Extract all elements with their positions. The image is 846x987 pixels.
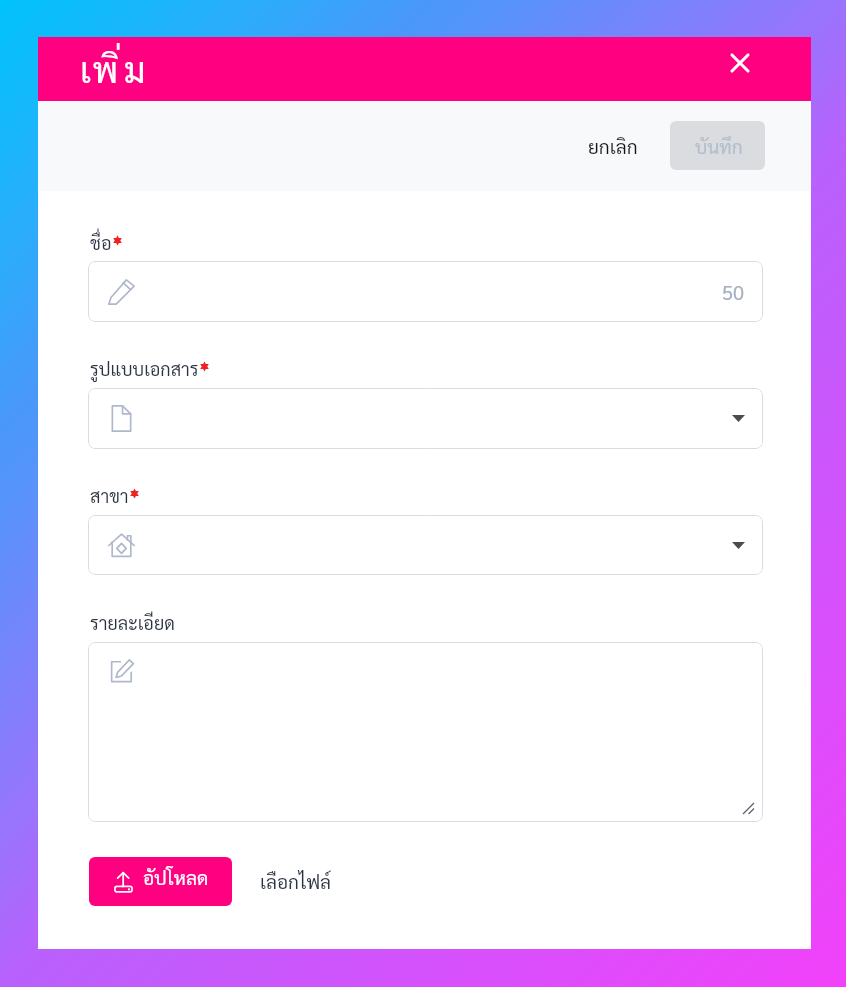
staticText: สาขา <box>90 484 129 507</box>
button[interactable]: ยกเลิก <box>574 126 652 167</box>
staticText: 50 <box>722 279 744 305</box>
button[interactable] <box>88 515 763 575</box>
button[interactable] <box>88 388 763 449</box>
button[interactable]: Close dialog <box>719 42 761 84</box>
staticText: บันทึก <box>695 134 743 159</box>
staticText: รูปแบบเอกสาร <box>90 357 199 380</box>
button[interactable]: อัปโหลด <box>89 857 232 906</box>
button[interactable] <box>88 642 763 822</box>
staticText: อัปโหลด <box>143 865 209 890</box>
staticText: เพิ่ม <box>80 46 148 91</box>
staticText: ยกเลิก <box>588 134 638 159</box>
staticText: ชื่อ <box>90 231 112 254</box>
staticText: รายละเอียด <box>90 611 175 634</box>
button[interactable]: บันทึก <box>670 121 765 170</box>
button[interactable]: 50 <box>88 261 763 322</box>
staticText: เลือกไฟล์ <box>260 869 332 894</box>
button[interactable]: เลือกไฟล์ <box>250 859 342 904</box>
